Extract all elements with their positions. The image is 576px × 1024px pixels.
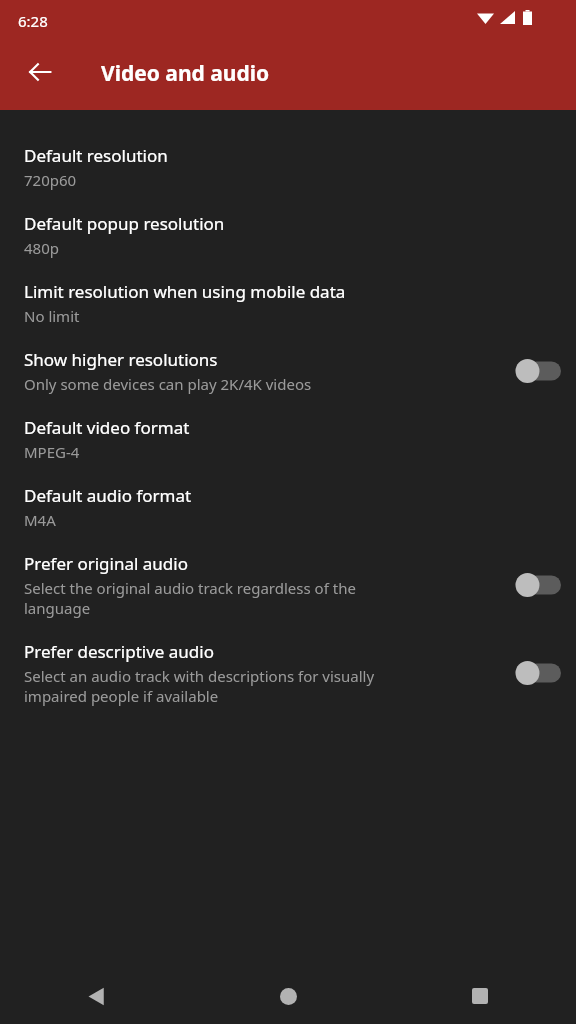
button[interactable]: Back [15,47,65,97]
staticText: Only some devices can play 2K/4K videos [24,374,312,394]
button[interactable]: Prefer original audio [0,541,576,629]
staticText: Limit resolution when using mobile data [24,280,346,303]
button[interactable]: Prefer descriptive audio [0,629,576,717]
staticText: Default video format [24,416,190,439]
button[interactable]: Recent apps [384,968,576,1024]
staticText: impaired people if available [24,686,219,706]
staticText: Prefer original audio [24,552,188,575]
button[interactable]: Toggle setting [508,349,568,393]
staticText: Select the original audio track regardle… [24,578,356,598]
staticText: MPEG-4 [24,442,80,462]
staticText: 480p [24,238,59,258]
button[interactable]: Default video format [0,405,576,473]
staticText: language [24,598,91,618]
staticText: Default resolution [24,144,168,167]
staticText: 720p60 [24,170,77,190]
button[interactable]: Toggle setting [508,563,568,607]
staticText: Prefer descriptive audio [24,640,214,663]
staticText: No limit [24,306,80,326]
button[interactable]: Default resolution [0,133,576,201]
staticText: 6:28 [18,11,48,31]
button[interactable]: Limit resolution when using mobile data [0,269,576,337]
button[interactable]: Show higher resolutions [0,337,576,405]
staticText: Video and audio [101,59,270,88]
staticText: Select an audio track with descriptions … [24,666,375,686]
button[interactable]: Default audio format [0,473,576,541]
button[interactable]: Back [0,968,192,1024]
staticText: M4A [24,510,56,530]
button[interactable]: Default popup resolution [0,201,576,269]
staticText: Default popup resolution [24,212,225,235]
button[interactable]: Home [192,968,384,1024]
staticText: Show higher resolutions [24,348,218,371]
button[interactable]: Toggle setting [508,651,568,695]
staticText: Default audio format [24,484,192,507]
